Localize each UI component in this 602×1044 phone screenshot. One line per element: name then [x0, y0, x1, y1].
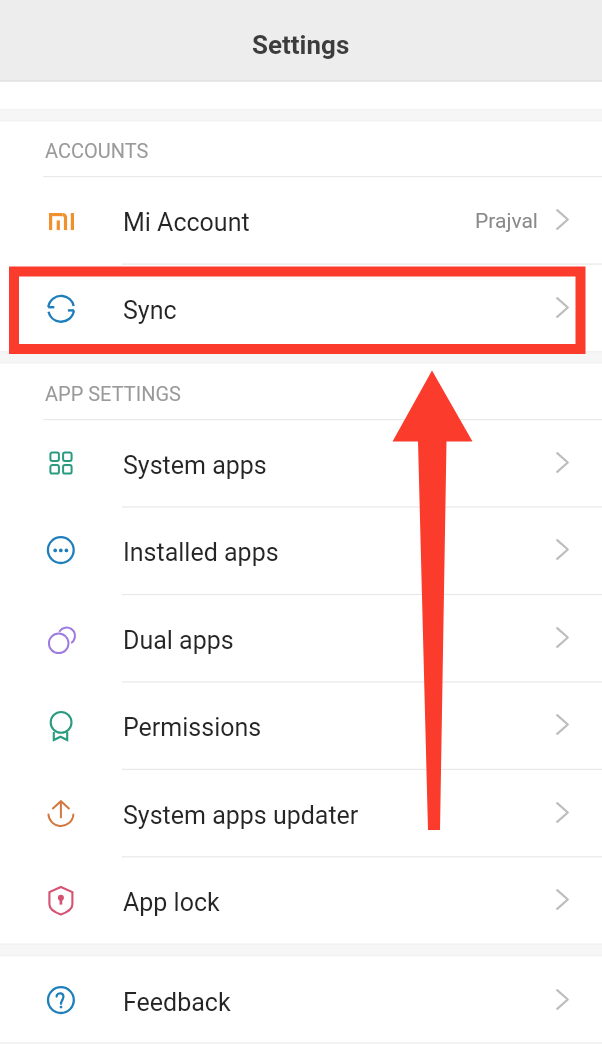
button[interactable]: System apps updater — [0, 769, 602, 856]
staticText: ACCOUNTS — [45, 139, 149, 162]
button[interactable]: Dual apps — [0, 594, 602, 681]
staticText: Permissions — [123, 713, 262, 742]
button[interactable]: Mi Account — [0, 176, 602, 263]
staticText: Sync — [123, 296, 177, 325]
staticText: App lock — [123, 888, 220, 917]
staticText: Settings — [252, 30, 350, 60]
button[interactable]: Permissions — [0, 681, 602, 768]
staticText: Mi Account — [123, 208, 250, 237]
button[interactable]: Installed apps — [0, 506, 602, 593]
button[interactable]: Sync — [0, 264, 602, 351]
staticText: Feedback — [123, 988, 231, 1017]
staticText: System apps — [123, 451, 267, 480]
staticText: Prajval — [475, 209, 538, 234]
button[interactable]: App lock — [0, 856, 602, 943]
button[interactable]: System apps — [0, 419, 602, 506]
button[interactable]: Feedback — [0, 956, 602, 1043]
staticText: APP SETTINGS — [45, 382, 181, 405]
staticText: Installed apps — [123, 538, 279, 567]
staticText: System apps updater — [123, 801, 359, 830]
staticText: Dual apps — [123, 626, 234, 655]
